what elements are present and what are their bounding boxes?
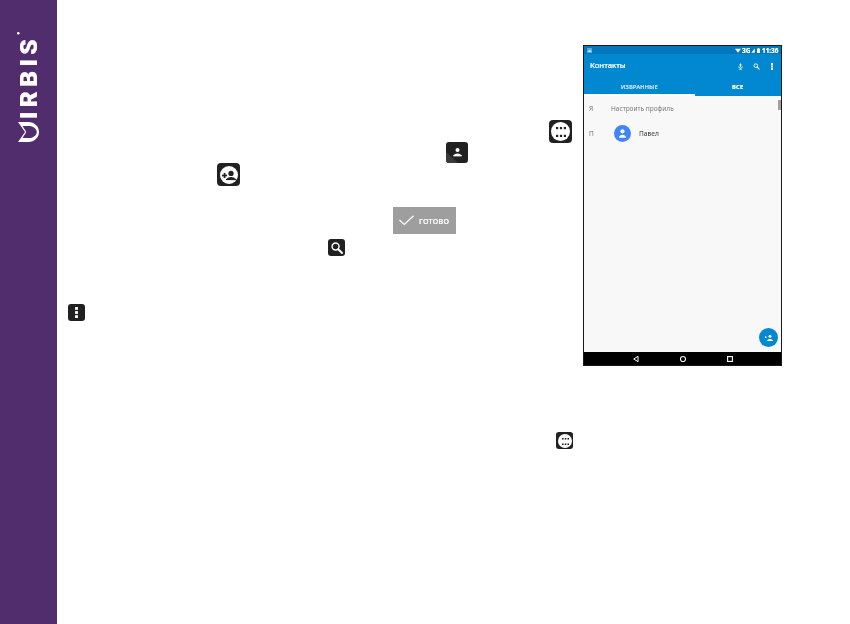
staticText: Павел: [639, 129, 659, 138]
staticText: ИЗБРАННЫЕ: [621, 83, 658, 91]
button[interactable]: Add contact: [759, 328, 778, 347]
staticText: Настроить профиль: [611, 104, 674, 113]
button[interactable]: Я: [584, 96, 781, 121]
staticText: П: [589, 129, 594, 138]
button[interactable]: Add contact: [217, 163, 240, 186]
staticText: Контакты: [590, 60, 626, 71]
button[interactable]: Search: [748, 58, 764, 74]
button[interactable]: Home: [676, 352, 689, 365]
button[interactable]: App drawer: [556, 432, 573, 449]
staticText: ВСЕ: [732, 83, 744, 91]
button[interactable]: Contacts app: [446, 142, 468, 163]
button[interactable]: ВСЕ: [695, 77, 781, 96]
staticText: ГОТОВО: [419, 216, 450, 226]
button[interactable]: App drawer: [549, 120, 572, 143]
staticText: 11:36: [762, 46, 779, 54]
button[interactable]: Recents: [723, 352, 736, 365]
button[interactable]: Voice search: [732, 58, 748, 74]
button[interactable]: More options: [68, 304, 85, 321]
button[interactable]: Back: [629, 352, 642, 365]
staticText: IRBIS: [14, 35, 38, 119]
button[interactable]: ИЗБРАННЫЕ: [584, 77, 695, 96]
staticText: 3G: [742, 46, 751, 54]
button[interactable]: Search: [328, 239, 345, 256]
button[interactable]: П: [584, 121, 781, 146]
staticText: Я: [589, 104, 594, 113]
button[interactable]: ГОТОВО: [393, 207, 456, 234]
button[interactable]: More options: [764, 58, 780, 74]
